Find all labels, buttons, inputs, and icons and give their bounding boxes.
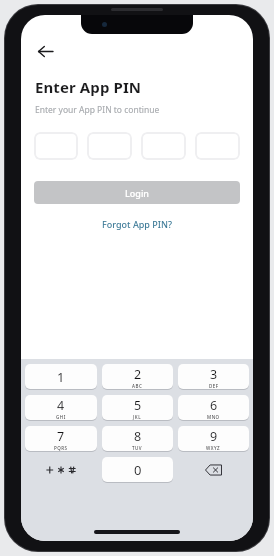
staticText: 0 <box>134 461 142 479</box>
staticText: PQRS <box>54 445 68 451</box>
staticText: 6 <box>210 397 218 414</box>
staticText: MNO <box>207 414 220 420</box>
button[interactable]: 2 <box>102 364 173 389</box>
staticText: ABC <box>132 383 143 389</box>
button[interactable]: PIN digit 4 <box>195 132 240 160</box>
button[interactable]: Login <box>34 181 240 204</box>
button[interactable]: 4 <box>25 395 97 420</box>
button[interactable]: 1 <box>25 364 97 389</box>
button[interactable]: 3 <box>178 364 249 389</box>
button[interactable]: Backspace <box>178 457 249 483</box>
staticText: GHI <box>56 414 66 420</box>
button[interactable]: 0 <box>102 457 173 482</box>
staticText: Login <box>125 187 149 199</box>
staticText: DEF <box>209 383 219 389</box>
button[interactable]: 6 <box>178 395 249 420</box>
staticText: 9 <box>210 428 218 445</box>
staticText: 8 <box>134 428 142 445</box>
staticText: 3 <box>210 366 218 383</box>
button[interactable]: 8 <box>102 426 173 451</box>
button[interactable]: PIN digit 2 <box>87 132 132 160</box>
staticText: TUV <box>132 445 143 451</box>
staticText: Enter App PIN <box>35 77 142 97</box>
staticText: 1 <box>57 368 65 386</box>
button[interactable]: PIN digit 1 <box>34 132 78 160</box>
button[interactable]: 9 <box>178 426 249 451</box>
button[interactable]: Symbols <box>25 457 97 483</box>
button[interactable]: Forgot App PIN? <box>96 216 178 232</box>
staticText: 4 <box>57 397 65 414</box>
staticText: 5 <box>134 397 142 414</box>
staticText: 2 <box>134 366 142 383</box>
staticText: WXYZ <box>206 445 221 451</box>
button[interactable]: Back <box>31 37 59 65</box>
staticText: Enter your App PIN to continue <box>35 104 160 116</box>
staticText: JKL <box>133 414 142 420</box>
button[interactable]: 5 <box>102 395 173 420</box>
button[interactable]: PIN digit 3 <box>141 132 186 160</box>
button[interactable]: 7 <box>25 426 97 451</box>
staticText: 7 <box>57 428 65 445</box>
staticText: Forgot App PIN? <box>102 218 172 230</box>
